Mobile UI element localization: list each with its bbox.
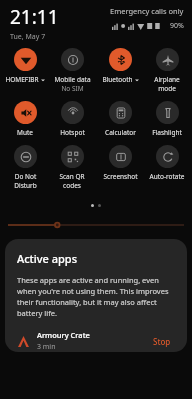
button[interactable]: Screenshot (97, 145, 143, 181)
button[interactable]: Airplane mode (144, 48, 190, 93)
staticText: 90% (170, 21, 184, 31)
staticText: Auto-rotate (149, 172, 185, 181)
staticText: Active apps (17, 251, 78, 266)
staticText: 21:11 (10, 4, 59, 30)
staticText: HOMEFIBR (5, 75, 39, 84)
staticText: Mobile data (54, 75, 91, 84)
staticText: Do Not Disturb (14, 172, 37, 190)
button[interactable]: Mute (2, 101, 48, 137)
button[interactable]: Hotspot (49, 101, 95, 137)
button[interactable]: Scan QR codes (49, 145, 95, 190)
staticText: Mute (17, 128, 33, 137)
staticText: 3 min (37, 342, 56, 352)
staticText: Armoury Crate (37, 330, 90, 340)
staticText: These apps are active and running, even … (17, 275, 175, 318)
button[interactable]: Flashlight (144, 101, 190, 137)
button[interactable]: Calculator (97, 101, 143, 137)
button[interactable]: Armoury Crate (17, 330, 175, 352)
staticText: Bluetooth (102, 75, 133, 84)
staticText: Stop (153, 336, 171, 347)
staticText: Airplane mode (154, 75, 180, 93)
staticText: Tue, May 7 (10, 32, 46, 42)
staticText: Scan QR codes (59, 172, 85, 190)
staticText: Hotspot (60, 128, 85, 137)
staticText: No SIM (61, 84, 84, 93)
button[interactable]: Auto-rotate (144, 145, 190, 181)
button[interactable]: HOMEFIBR (2, 48, 48, 84)
button[interactable]: Mobile data (49, 48, 95, 93)
staticText: Screenshot (103, 172, 138, 181)
staticText: Flashlight (152, 128, 182, 137)
button[interactable]: Brightness (8, 221, 184, 229)
button[interactable]: Stop (149, 333, 175, 350)
staticText: Emergency calls only (110, 6, 184, 16)
button[interactable]: Do Not Disturb (2, 145, 48, 190)
button[interactable]: Bluetooth (97, 48, 143, 84)
staticText: Calculator (105, 128, 136, 137)
